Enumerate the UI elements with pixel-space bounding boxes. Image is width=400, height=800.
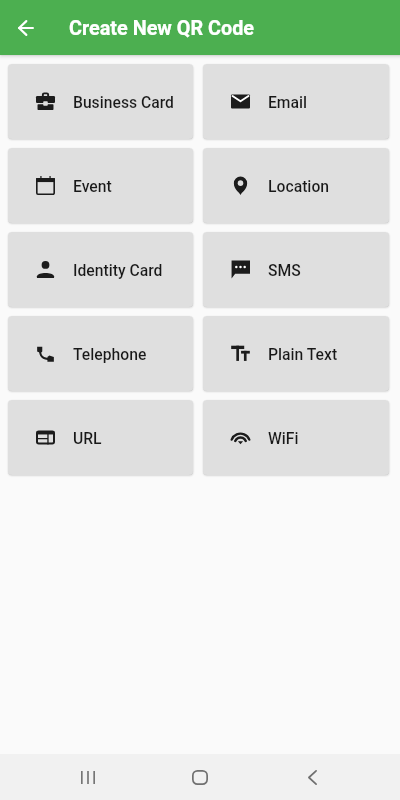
button[interactable]: Home (144, 754, 256, 800)
button[interactable]: Identity Card (8, 232, 193, 307)
button[interactable]: WiFi (203, 400, 389, 475)
staticText: Email (268, 93, 308, 111)
button[interactable]: SMS (203, 232, 389, 307)
button[interactable]: Location (203, 148, 389, 223)
button[interactable]: Plain Text (203, 316, 389, 391)
staticText: Create New QR Code (69, 17, 255, 40)
button[interactable]: Event (8, 148, 193, 223)
staticText: Event (73, 177, 112, 195)
button[interactable]: Navigate up (8, 10, 44, 46)
staticText: WiFi (268, 429, 299, 447)
staticText: SMS (268, 261, 301, 279)
button[interactable]: Back (256, 754, 368, 800)
button[interactable]: URL (8, 400, 193, 475)
staticText: Plain Text (268, 345, 338, 363)
button[interactable]: Email (203, 64, 389, 139)
staticText: URL (73, 429, 102, 447)
button[interactable]: Recent apps (32, 754, 144, 800)
button[interactable]: Business Card (8, 64, 193, 139)
staticText: Identity Card (73, 261, 163, 279)
staticText: Business Card (73, 93, 174, 111)
staticText: Telephone (73, 345, 147, 363)
staticText: Location (268, 177, 330, 195)
button[interactable]: Telephone (8, 316, 193, 391)
